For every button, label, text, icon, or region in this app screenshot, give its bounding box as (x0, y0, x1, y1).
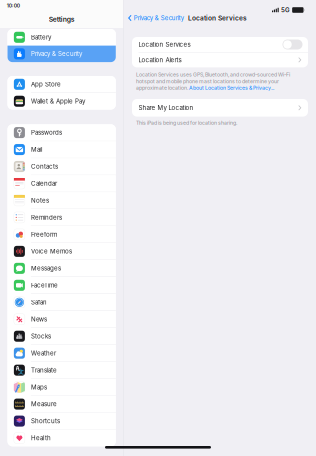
staticText: hotspot and mobile phone mast locations … (136, 78, 279, 84)
button[interactable]: Share My Location (132, 99, 308, 117)
staticText: A (16, 365, 20, 372)
button[interactable]: Safari (7, 294, 116, 311)
staticText: Translate (31, 366, 57, 374)
staticText: Location Services (138, 41, 190, 48)
button[interactable]: Measure (7, 396, 116, 412)
staticText: approximate location. (136, 85, 189, 91)
button[interactable]: 文 (7, 362, 116, 378)
staticText: Location Alerts (138, 56, 181, 64)
button[interactable]: News (7, 311, 116, 328)
button[interactable]: Contacts (7, 158, 116, 175)
button[interactable]: Maps (7, 379, 116, 395)
button[interactable]: Privacy & Security (7, 46, 116, 62)
staticText: App Store (31, 81, 61, 88)
staticText: 5G (281, 6, 290, 14)
staticText: FaceTime (31, 282, 58, 289)
staticText: Settings (49, 15, 75, 23)
button[interactable]: Battery (7, 29, 116, 46)
staticText: Share My Location (138, 104, 193, 112)
staticText: 文 (18, 368, 24, 375)
staticText: Wallet & Apple Pay (31, 97, 85, 105)
staticText: Shortcuts (31, 417, 60, 425)
staticText: 10:00 (7, 3, 20, 9)
staticText: This iPad is being used for location sha… (136, 120, 237, 126)
button[interactable]: FaceTime (7, 277, 116, 294)
button[interactable]: Passwords (7, 124, 116, 141)
button[interactable]: Stocks (7, 328, 116, 344)
button[interactable]: App Store (7, 76, 116, 93)
staticText: Battery (31, 34, 51, 41)
button[interactable]: Weather (7, 345, 116, 361)
staticText: Calendar (31, 180, 57, 187)
staticText: Safari (31, 299, 46, 306)
button[interactable]: Reminders (7, 209, 116, 226)
staticText: Weather (31, 349, 56, 357)
button[interactable]: Health (7, 430, 116, 446)
button[interactable]: Notes (7, 192, 116, 209)
staticText: Measure (31, 400, 57, 408)
staticText: Passwords (31, 129, 62, 136)
button[interactable]: Messages (7, 260, 116, 277)
button[interactable]: Freeform (7, 226, 116, 243)
staticText: Messages (31, 265, 61, 272)
staticText: Privacy & Security (31, 50, 82, 58)
staticText: Mail (31, 146, 42, 153)
button[interactable]: Location Alerts (132, 52, 308, 67)
staticText: Privacy & Security (134, 14, 184, 22)
staticText: Location Services (188, 14, 247, 22)
staticText: Reminders (31, 214, 62, 221)
staticText: News (31, 315, 47, 323)
staticText: Contacts (31, 163, 58, 170)
button[interactable]: Privacy & Security (123, 11, 184, 25)
staticText: Notes (31, 197, 49, 204)
button[interactable]: Calendar (7, 175, 116, 192)
staticText: Location Services uses GPS, Bluetooth, a… (136, 71, 290, 78)
button[interactable]: Shortcuts (7, 413, 116, 429)
button[interactable]: About Location Services & Privacy... (189, 85, 274, 91)
staticText: Maps (31, 383, 47, 391)
button[interactable]: Mail (7, 141, 116, 158)
button[interactable]: Wallet & Apple Pay (7, 93, 116, 110)
button[interactable]: Voice Memos (7, 243, 116, 260)
staticText: Stocks (31, 332, 51, 340)
staticText: Health (31, 434, 51, 442)
staticText: Voice Memos (31, 248, 72, 255)
staticText: Freeform (31, 231, 57, 238)
staticText: About Location Services & Privacy... (189, 85, 274, 91)
